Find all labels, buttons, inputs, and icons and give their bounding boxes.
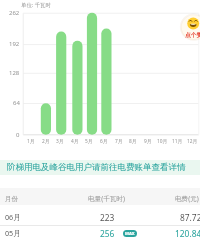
staticText: 阶梯用电及峰谷电用户请前往电费账单查看详情 xyxy=(7,162,186,173)
staticText: 256 xyxy=(100,228,115,239)
staticText: 6月 xyxy=(100,138,108,145)
button[interactable]: 05月 xyxy=(0,226,200,240)
staticText: MAX xyxy=(125,231,135,237)
staticText: 223 xyxy=(100,212,115,223)
staticText: 05月 xyxy=(5,228,21,238)
button[interactable]: 阶梯用电及峰谷电用户请前往电费账单查看详情 xyxy=(0,160,200,175)
staticText: 262 xyxy=(9,9,20,17)
staticText: 06月 xyxy=(5,212,21,222)
staticText: 12月 xyxy=(187,138,198,145)
staticText: 1月 xyxy=(27,138,35,145)
staticText: 120.84 xyxy=(175,228,200,239)
staticText: 5月 xyxy=(85,138,93,145)
staticText: 3月 xyxy=(56,138,64,145)
staticText: 4月 xyxy=(71,138,79,145)
staticText: 9月 xyxy=(144,138,152,145)
staticText: 电量(千瓦时) xyxy=(88,194,125,203)
staticText: 8月 xyxy=(129,138,137,145)
button[interactable] xyxy=(181,15,200,40)
staticText: 11月 xyxy=(172,138,183,145)
staticText: 0 xyxy=(16,131,20,139)
staticText: 10月 xyxy=(157,138,168,145)
staticText: 128 xyxy=(9,69,20,77)
staticText: 192 xyxy=(9,40,20,48)
staticText: 单位: 千瓦时 xyxy=(21,1,51,8)
staticText: 7月 xyxy=(115,138,123,145)
staticText: 64 xyxy=(13,99,20,107)
staticText: 点个赞 xyxy=(185,31,200,38)
staticText: 电费(元) xyxy=(175,194,199,203)
button[interactable]: 06月 xyxy=(0,205,200,227)
staticText: 2月 xyxy=(42,138,50,145)
staticText: 87.72 xyxy=(180,212,200,223)
staticText: 月份 xyxy=(5,195,19,203)
